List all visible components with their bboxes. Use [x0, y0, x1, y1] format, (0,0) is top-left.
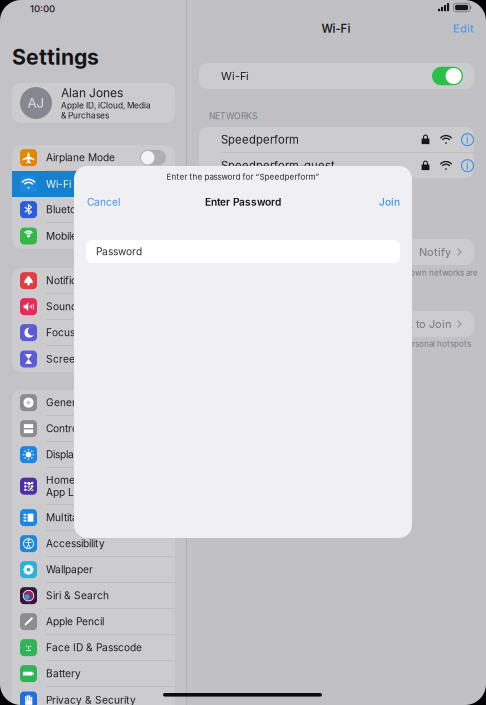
button[interactable]: AJ [12, 83, 175, 123]
button[interactable]: Speedperform-guest [199, 153, 474, 178]
button[interactable]: Privacy & Security [12, 687, 175, 705]
button[interactable]: Siri & Search [12, 583, 175, 609]
staticText: Password [96, 245, 142, 258]
staticText: Join [379, 196, 400, 208]
staticText: Wi-Fi [221, 69, 249, 83]
staticText: Wi-Fi [321, 22, 350, 36]
staticText: Wi-Fi [46, 178, 71, 190]
button[interactable]: Edit [444, 16, 486, 41]
staticText: Enter Password [205, 196, 281, 208]
staticText: i [466, 159, 469, 172]
staticText: Alan Jones [61, 86, 123, 100]
button[interactable]: Multitasking & Gestures [12, 505, 175, 531]
staticText: Sounds [46, 300, 82, 313]
staticText: Apple Pencil [46, 615, 104, 628]
button[interactable]: Wallpaper [12, 557, 175, 583]
button[interactable]: Wi-Fi [199, 63, 474, 89]
button[interactable]: Sounds [12, 294, 175, 320]
button[interactable]: Notifications [12, 268, 175, 294]
staticText: Siri & Search [46, 589, 109, 602]
staticText: Multitasking & Gestures [46, 511, 159, 524]
staticText: Speedperform [221, 133, 299, 146]
button[interactable]: Ask to Join Networks [199, 239, 474, 265]
button[interactable]: Battery [12, 661, 175, 687]
staticText: Bluetooth [46, 203, 91, 216]
staticText: i [466, 133, 469, 146]
staticText: Settings [12, 44, 99, 70]
staticText: Cancel [87, 196, 120, 208]
button[interactable]: Password [86, 240, 400, 263]
button[interactable]: Bluetooth [12, 197, 175, 223]
staticText: Wallpaper [46, 563, 93, 576]
button[interactable]: Cancel [74, 190, 128, 214]
button[interactable]: Control Centre [12, 416, 175, 442]
staticText: Face ID & Passcode [46, 641, 142, 654]
button[interactable]: Speedperform [199, 127, 474, 153]
staticText: & Purchases [61, 110, 109, 120]
staticText: Accessibility [46, 537, 105, 550]
button[interactable]: Join [371, 190, 412, 214]
button[interactable]: Apple Pencil [12, 609, 175, 635]
button[interactable]: Wi-Fi [12, 171, 175, 197]
staticText: Home Screen & [46, 474, 123, 486]
button[interactable]: Face ID & Passcode [12, 635, 175, 661]
button[interactable]: Accessibility [12, 531, 175, 557]
staticText: Screen Time [46, 353, 108, 365]
staticText: Control Centre [46, 422, 115, 435]
staticText: Notify [419, 245, 451, 259]
staticText: Apple ID, iCloud, Media [61, 100, 151, 110]
staticText: Known networks will be joined automatica… [209, 268, 478, 278]
staticText: Enter the password for “Speedperform” [166, 172, 319, 182]
staticText: Display & Brightness [46, 448, 143, 461]
staticText: App Library [46, 486, 102, 498]
staticText: Ask to Join [393, 317, 451, 331]
staticText: Privacy & Security [46, 694, 136, 705]
staticText: Airplane Mode [46, 151, 115, 164]
staticText: AJ [27, 95, 44, 111]
staticText: NETWORKS [209, 111, 257, 121]
button[interactable]: General [12, 390, 175, 416]
staticText: Focus [46, 326, 75, 339]
button[interactable]: Auto-Join Hotspot [199, 311, 474, 337]
staticText: Allow this device to automatically disco… [209, 339, 471, 349]
button[interactable]: Display & Brightness [12, 442, 175, 468]
staticText: Mobile Data [46, 230, 102, 242]
button[interactable]: Mobile Data [12, 223, 175, 249]
button[interactable]: Focus [12, 320, 175, 346]
staticText: Notifications [46, 274, 105, 287]
button[interactable]: Home Screen & [12, 468, 175, 505]
staticText: Speedperform-guest [221, 159, 335, 172]
button[interactable]: Screen Time [12, 346, 175, 372]
staticText: Edit [453, 22, 474, 35]
staticText: General [46, 396, 84, 409]
staticText: Battery [46, 667, 81, 680]
staticText: 10:00 [30, 3, 55, 15]
button[interactable]: Airplane Mode [12, 145, 175, 171]
